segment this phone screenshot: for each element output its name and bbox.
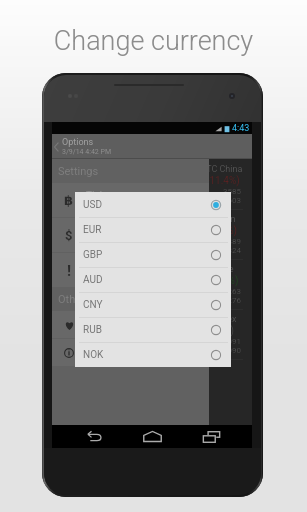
staticText: Other — [58, 293, 85, 306]
button[interactable]: About — [52, 339, 209, 367]
button[interactable]: $ — [52, 218, 209, 253]
button[interactable]: CNY — [75, 293, 231, 317]
staticText: Bitfinex — [209, 314, 243, 325]
button[interactable]: EUR — [75, 218, 231, 242]
button[interactable]: NOK — [75, 343, 231, 367]
button[interactable]: Home — [135, 425, 169, 448]
staticText: (-.--%) — [209, 325, 243, 337]
staticText: 3585 — [209, 187, 241, 196]
button[interactable]: AUD — [75, 268, 231, 292]
staticText: None — [86, 272, 105, 281]
staticText: Donate — [86, 319, 118, 331]
staticText: EUR — [83, 224, 102, 236]
staticText: ฿ — [64, 193, 74, 208]
staticText: About — [86, 347, 113, 359]
button[interactable]: ฿ — [52, 183, 209, 218]
staticText: 1889 — [209, 237, 241, 246]
staticText: Manage exchanges — [86, 202, 156, 211]
button[interactable]: RUB — [75, 318, 231, 342]
staticText: Options — [62, 137, 94, 148]
staticText: USD — [83, 199, 102, 211]
staticText: (-2.4%) — [209, 225, 243, 237]
staticText: USD — [86, 237, 102, 246]
staticText: 3603 — [209, 196, 241, 205]
button[interactable]: Donate — [52, 311, 209, 339]
staticText: BTC China — [209, 164, 243, 175]
staticText: 0.00091 — [209, 337, 241, 346]
button[interactable]: USD — [75, 192, 231, 217]
staticText: (+0.2%) — [209, 275, 243, 287]
staticText: 0.00090 — [209, 346, 241, 355]
staticText: $ — [65, 228, 73, 243]
button[interactable]: ! — [52, 253, 209, 288]
staticText: NOK — [83, 349, 104, 361]
button[interactable]: Back — [77, 425, 111, 448]
staticText: ! — [67, 262, 72, 280]
staticText: BTC-e — [209, 264, 243, 275]
staticText: 4:43 — [232, 123, 250, 134]
staticText: Settings — [58, 165, 99, 178]
staticText: (-11.4%) — [209, 175, 243, 187]
staticText: GBP — [83, 249, 103, 261]
staticText: RUB — [83, 324, 102, 336]
staticText: 4276 — [209, 296, 241, 305]
staticText: Tickers — [86, 190, 119, 202]
staticText: 1824 — [209, 246, 241, 255]
staticText: Change currency — [0, 25, 307, 57]
button[interactable]: GBP — [75, 243, 231, 267]
staticText: 3/9/14 4:42 PM — [62, 148, 112, 156]
button[interactable]: Recent apps — [194, 425, 228, 448]
staticText: Bitcoin — [209, 214, 243, 225]
staticText: Alerts — [86, 260, 113, 272]
staticText: Currency — [86, 225, 126, 237]
staticText: CNY — [83, 299, 103, 311]
staticText: 4263 — [209, 287, 241, 296]
staticText: AUD — [83, 274, 103, 286]
